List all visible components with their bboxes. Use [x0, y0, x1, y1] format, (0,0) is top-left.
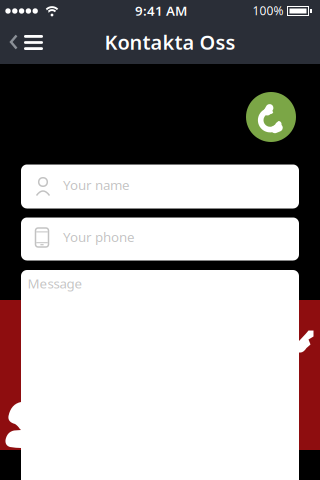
button[interactable]: Back — [0, 20, 21, 64]
button[interactable]: Call — [246, 92, 296, 142]
button[interactable]: Your phone — [21, 217, 299, 260]
staticText: Your name — [63, 176, 130, 194]
button[interactable]: Message — [21, 270, 299, 480]
staticText: Message — [27, 274, 82, 292]
staticText: 100% — [252, 2, 283, 18]
button[interactable]: Your name — [21, 164, 299, 208]
button[interactable]: Menu — [21, 20, 49, 64]
staticText: Your phone — [63, 228, 135, 246]
staticText: 9:41 AM — [135, 2, 187, 19]
staticText: Kontakta Oss — [104, 29, 235, 55]
